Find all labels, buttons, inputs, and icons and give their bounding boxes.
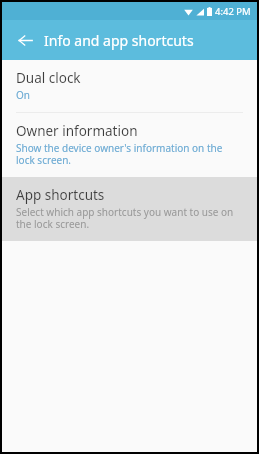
staticText: On bbox=[16, 88, 30, 102]
staticText: App shortcuts bbox=[16, 186, 105, 204]
button[interactable]: App shortcuts bbox=[2, 177, 257, 241]
button[interactable]: Owner information bbox=[2, 113, 257, 177]
staticText: 4:42 PM bbox=[215, 5, 251, 18]
staticText: Show the device owner's information on t… bbox=[16, 141, 243, 167]
staticText: Info and app shortcuts bbox=[44, 31, 194, 50]
staticText: Dual clock bbox=[16, 69, 81, 87]
staticText: Owner information bbox=[16, 122, 138, 140]
button[interactable]: Back bbox=[12, 27, 38, 53]
button[interactable]: Dual clock bbox=[2, 60, 257, 112]
staticText: Select which app shortcuts you want to u… bbox=[16, 205, 243, 231]
